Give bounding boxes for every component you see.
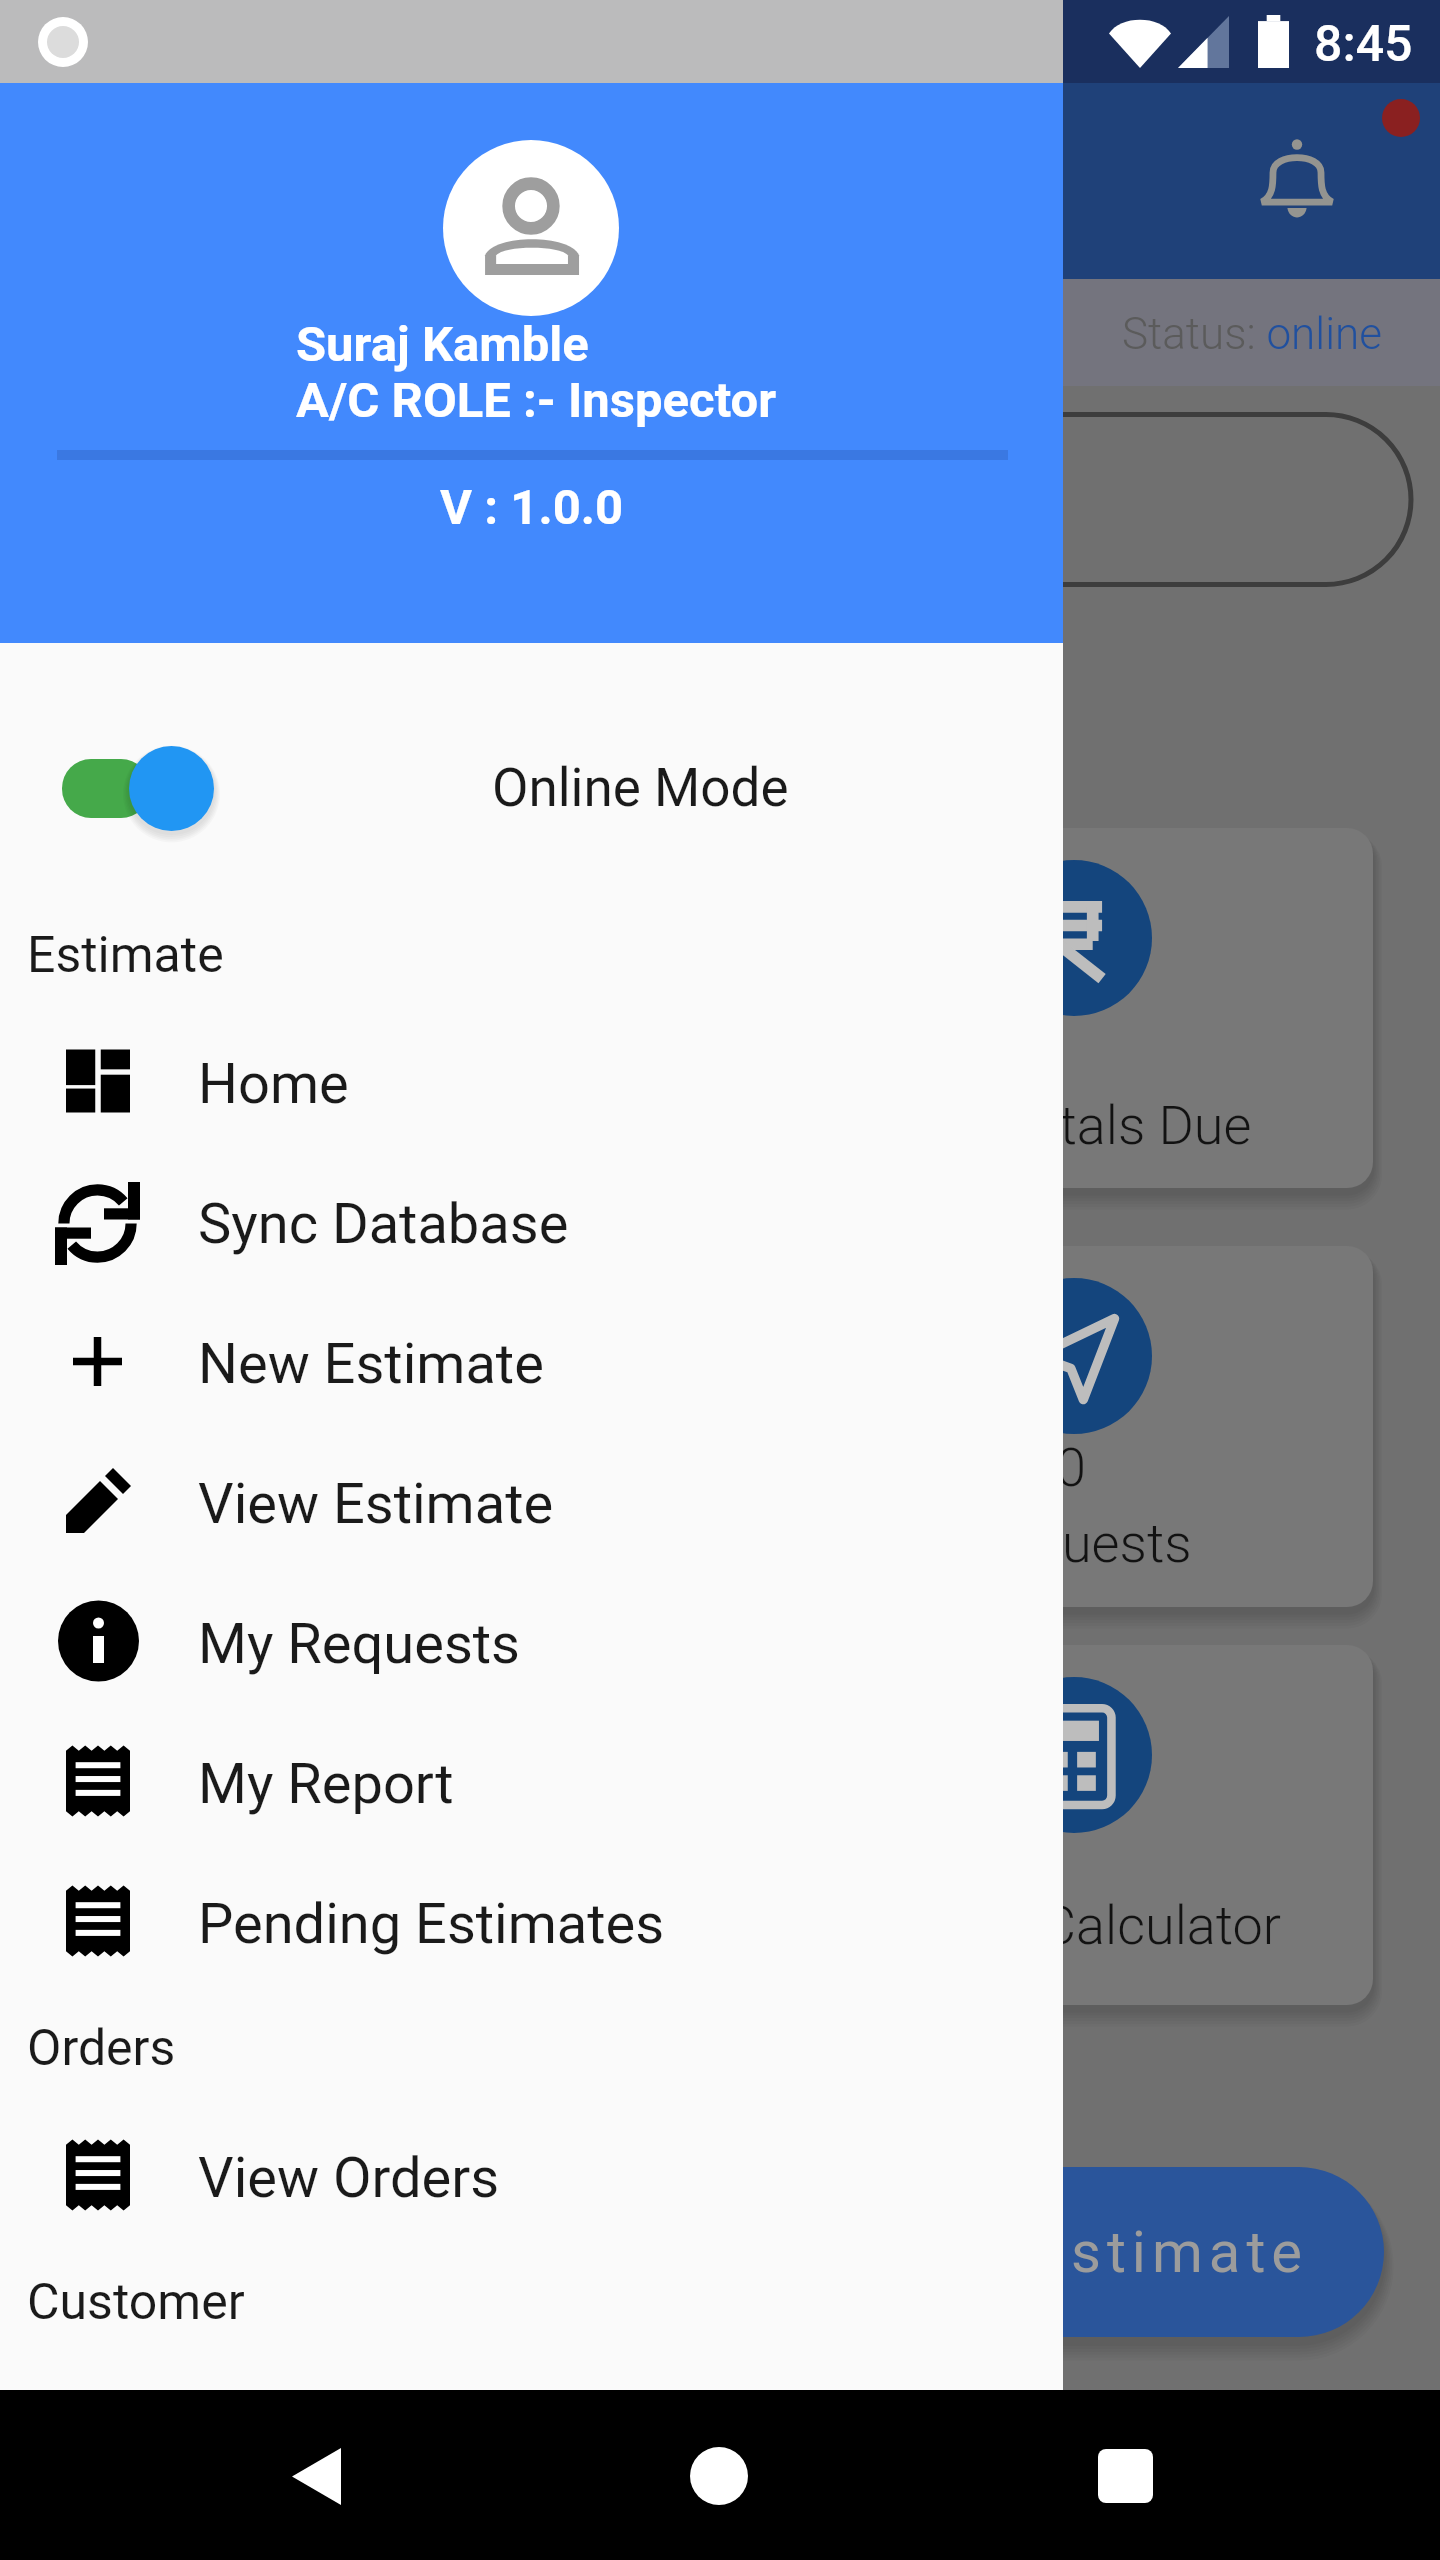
staticText: Total Rentals Due: [836, 1094, 1252, 1157]
staticText: V : 1.0.0: [440, 479, 624, 536]
button[interactable]: Recents: [1040, 2391, 1210, 2560]
button[interactable]: My Requests: [0, 1571, 1063, 1711]
button[interactable]: 0: [0, 1246, 1373, 1607]
staticText: My Requests: [884, 1512, 1192, 1575]
staticText: Online Mode: [492, 757, 789, 819]
staticText: View Estimate: [198, 1471, 554, 1537]
staticText: Suraj Kamble A/C ROLE :- Inspector: [296, 316, 777, 429]
staticText: Sync Database: [198, 1191, 569, 1257]
staticText: Estimate: [1032, 2218, 1309, 2286]
staticText: 8:45: [1314, 15, 1413, 74]
staticText: Estimate: [27, 926, 224, 985]
staticText: 0: [1056, 1436, 1086, 1499]
staticText: Customer: [27, 2273, 245, 2332]
button[interactable]: Online Mode: [0, 730, 1063, 846]
staticText: Pending Estimates: [198, 1891, 665, 1957]
staticText: My Requests: [198, 1611, 520, 1677]
staticText: New Estimate: [198, 1331, 544, 1397]
button[interactable]: Notifications: [1224, 108, 1370, 254]
button[interactable]: Home: [634, 2391, 804, 2560]
button[interactable]: My Report: [0, 1711, 1063, 1851]
button[interactable]: New Estimate: [0, 1291, 1063, 1431]
button[interactable]: Estimate: [0, 2167, 1384, 2337]
staticText: Home: [198, 1051, 349, 1117]
staticText: My Report: [198, 1751, 454, 1817]
button[interactable]: Total Rentals Due: [0, 828, 1373, 1188]
button[interactable]: Back: [231, 2391, 401, 2560]
button[interactable]: View Estimate: [0, 1431, 1063, 1571]
staticText: View Orders: [198, 2145, 500, 2211]
staticText: Status: online: [1122, 308, 1382, 360]
button[interactable]: Sync Database: [0, 1151, 1063, 1291]
button[interactable]: Calculator: [0, 1645, 1373, 2005]
staticText: Orders: [27, 2019, 176, 2078]
button[interactable]: Pending Estimates: [0, 1851, 1063, 1991]
button[interactable]: Home: [0, 1011, 1063, 1151]
button[interactable]: View Orders: [0, 2105, 1063, 2245]
staticText: Calculator: [1041, 1894, 1282, 1957]
